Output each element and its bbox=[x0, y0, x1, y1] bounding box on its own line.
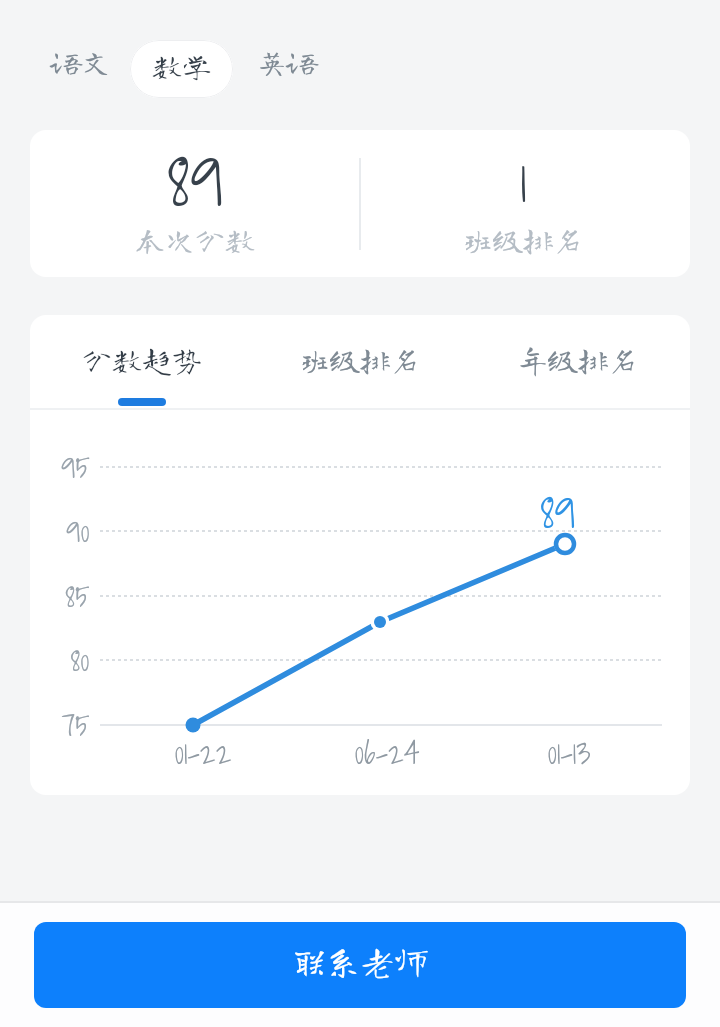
button[interactable]: 联系老师 bbox=[34, 922, 686, 1008]
button[interactable]: 数学 bbox=[130, 40, 233, 98]
staticText: 01-22 bbox=[174, 728, 232, 778]
staticText: 85 bbox=[65, 572, 90, 620]
staticText: 数学 bbox=[152, 51, 212, 81]
staticText: 班级排名 bbox=[463, 225, 583, 255]
staticText: 80 bbox=[70, 636, 90, 684]
staticText: 75 bbox=[61, 701, 90, 749]
staticText: 01-13 bbox=[547, 728, 591, 778]
staticText: 本次分数 bbox=[135, 225, 255, 255]
button[interactable]: 语文 bbox=[46, 33, 116, 91]
staticText: 英语 bbox=[257, 47, 317, 77]
staticText: 班级排名 bbox=[300, 345, 420, 375]
staticText: 分数趋势 bbox=[82, 345, 202, 375]
staticText: 联系老师 bbox=[292, 943, 429, 978]
button[interactable]: 班级排名 bbox=[280, 337, 440, 383]
button[interactable]: 英语 bbox=[252, 33, 322, 91]
staticText: 90 bbox=[66, 507, 90, 555]
staticText: 1 bbox=[520, 134, 527, 227]
staticText: 95 bbox=[61, 443, 90, 491]
button[interactable]: 年级排名 bbox=[498, 337, 658, 383]
staticText: 06-24 bbox=[354, 728, 420, 778]
staticText: 89 bbox=[167, 130, 224, 236]
staticText: 年级排名 bbox=[518, 345, 638, 375]
staticText: 89 bbox=[540, 476, 576, 547]
staticText: 语文 bbox=[51, 47, 111, 77]
button[interactable]: 分数趋势 bbox=[62, 337, 222, 383]
